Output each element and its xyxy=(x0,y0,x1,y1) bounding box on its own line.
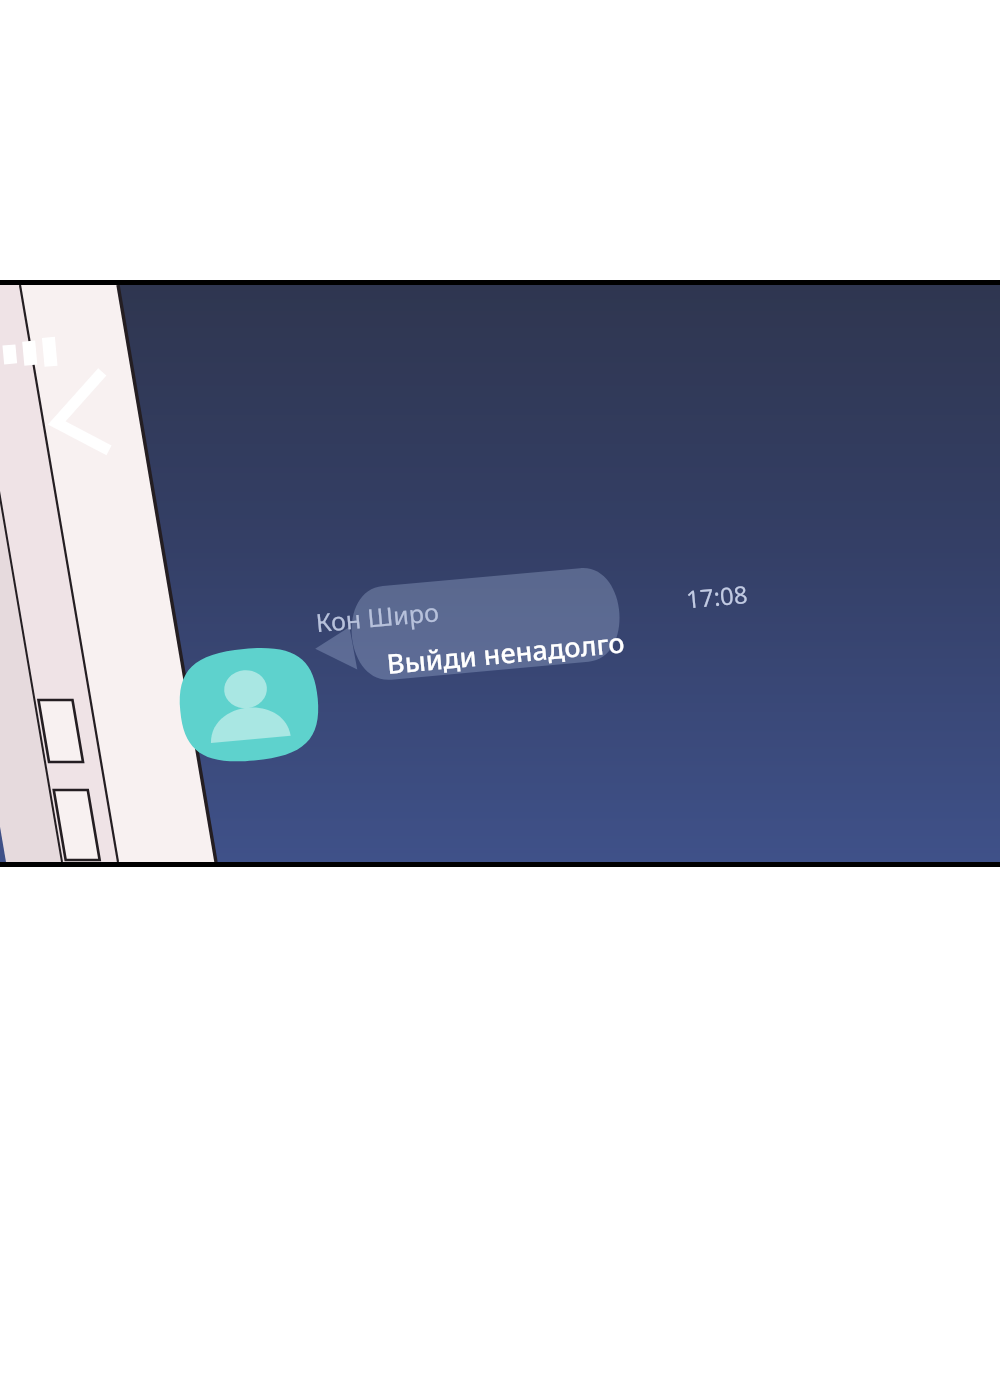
button[interactable]: Chat conversation with Кон Широ xyxy=(0,0,1000,1388)
